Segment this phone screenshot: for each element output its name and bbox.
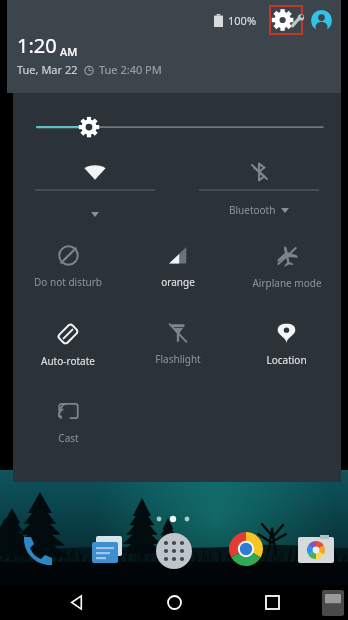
staticText: Auto-rotate: [41, 354, 95, 368]
button[interactable]: Wi-Fi: [13, 155, 177, 225]
button[interactable]: Settings: [269, 5, 303, 35]
button[interactable]: User profile: [309, 8, 333, 32]
button[interactable]: Brightness: [13, 93, 341, 155]
staticText: Do not disturb: [34, 275, 102, 289]
button[interactable]: Cast: [13, 387, 123, 465]
staticText: Airplane mode: [252, 276, 322, 290]
button[interactable]: Back: [54, 585, 98, 620]
staticText: Tue 2:40 PM: [99, 62, 162, 77]
button[interactable]: Flashlight: [123, 309, 232, 387]
staticText: AM: [60, 44, 78, 59]
button[interactable]: Location: [232, 309, 341, 387]
staticText: orange: [161, 275, 195, 289]
staticText: Tue, Mar 22: [17, 62, 78, 77]
staticText: Bluetooth: [229, 203, 276, 217]
button[interactable]: Bluetooth: [177, 155, 341, 225]
staticText: Flashlight: [155, 352, 201, 366]
staticText: Cast: [58, 431, 79, 445]
staticText: Location: [266, 353, 307, 367]
button[interactable]: Auto-rotate: [13, 309, 123, 387]
button[interactable]: Do not disturb: [13, 231, 123, 309]
button[interactable]: Home: [152, 585, 196, 620]
button[interactable]: Airplane mode: [232, 231, 341, 309]
staticText: 1:20: [17, 32, 57, 59]
button[interactable]: Recents: [250, 585, 294, 620]
button[interactable]: Cellular orange: [123, 231, 232, 309]
staticText: 100%: [228, 13, 257, 28]
